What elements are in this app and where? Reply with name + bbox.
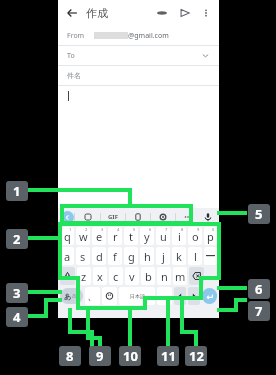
- staticText: 5: [133, 227, 136, 232]
- staticText: l: [194, 249, 197, 264]
- staticText: 9: [96, 347, 104, 365]
- button[interactable]: More options: [200, 7, 212, 19]
- button[interactable]: 、: [85, 287, 100, 305]
- staticText: 作成: [86, 6, 108, 20]
- button[interactable]: Enter: [202, 288, 217, 304]
- staticText: 7: [165, 227, 168, 232]
- button[interactable]: 。: [157, 287, 172, 305]
- staticText: 2: [85, 227, 88, 232]
- button[interactable]: Back: [61, 211, 74, 224]
- button[interactable]: [60, 267, 75, 285]
- button[interactable]: Back: [65, 6, 79, 20]
- staticText: To: [67, 51, 75, 61]
- button[interactable]: n: [157, 267, 171, 285]
- staticText: 2: [13, 230, 21, 248]
- button[interactable]: o: [188, 227, 202, 245]
- button[interactable]: v: [125, 267, 139, 285]
- button[interactable]: ー: [204, 247, 217, 265]
- button[interactable]: m: [173, 267, 187, 285]
- button[interactable]: あ: [60, 288, 83, 304]
- staticText: GIF: [108, 213, 118, 221]
- staticText: r: [113, 229, 118, 244]
- staticText: 7: [255, 302, 263, 320]
- staticText: z: [81, 269, 87, 284]
- button[interactable]: e: [92, 227, 106, 245]
- button[interactable]: [188, 287, 200, 305]
- staticText: d: [96, 249, 103, 264]
- staticText: k: [176, 249, 182, 264]
- button[interactable]: b: [141, 267, 155, 285]
- staticText: 1: [13, 182, 21, 200]
- button[interactable]: z: [77, 267, 91, 285]
- button[interactable]: c: [109, 267, 123, 285]
- staticText: 4: [117, 227, 120, 232]
- staticText: 日本語: [130, 293, 145, 299]
- button[interactable]: h: [140, 247, 154, 265]
- staticText: ー: [205, 249, 216, 263]
- staticText: x: [97, 269, 103, 284]
- button[interactable]: x: [93, 267, 107, 285]
- staticText: h: [144, 249, 151, 264]
- button[interactable]: [102, 287, 117, 305]
- staticText: 0: [212, 227, 215, 232]
- button[interactable]: f: [108, 247, 122, 265]
- button[interactable]: g: [124, 247, 138, 265]
- staticText: From: [67, 31, 85, 41]
- staticText: 3: [101, 227, 104, 232]
- staticText: 8: [181, 227, 184, 232]
- staticText: s: [80, 249, 86, 264]
- button[interactable]: [174, 287, 186, 305]
- staticText: c: [113, 269, 119, 284]
- staticText: 4: [13, 308, 21, 326]
- staticText: u: [160, 229, 167, 244]
- staticText: あ: [64, 292, 72, 301]
- staticText: t: [129, 229, 133, 244]
- staticText: 1: [69, 227, 72, 232]
- button[interactable]: [189, 267, 204, 285]
- button[interactable]: a: [60, 247, 74, 265]
- button[interactable]: q: [60, 227, 74, 245]
- staticText: j: [162, 249, 165, 264]
- staticText: w: [79, 229, 88, 244]
- button[interactable]: s: [76, 247, 90, 265]
- staticText: q: [64, 229, 71, 244]
- staticText: 8: [66, 347, 74, 365]
- staticText: b: [145, 269, 152, 284]
- staticText: i: [178, 229, 181, 244]
- button[interactable]: Attach: [155, 6, 169, 20]
- staticText: p: [207, 229, 214, 244]
- staticText: 5: [255, 205, 263, 223]
- button[interactable]: Clipboard: [126, 212, 150, 222]
- staticText: a: [64, 249, 71, 264]
- staticText: 6: [255, 280, 263, 298]
- button[interactable]: i: [172, 227, 186, 245]
- button[interactable]: r: [108, 227, 122, 245]
- button[interactable]: Voice input: [200, 208, 216, 226]
- button[interactable]: j: [156, 247, 170, 265]
- button[interactable]: Settings: [151, 212, 175, 222]
- button[interactable]: p: [204, 227, 217, 245]
- staticText: @gmail.com: [128, 31, 169, 41]
- staticText: 11: [161, 347, 176, 365]
- button[interactable]: y: [140, 227, 154, 245]
- button[interactable]: Send: [178, 6, 192, 20]
- button[interactable]: w: [76, 227, 90, 245]
- staticText: g: [128, 249, 135, 264]
- button[interactable]: 日本語: [119, 287, 155, 305]
- button[interactable]: d: [92, 247, 106, 265]
- button[interactable]: u: [156, 227, 170, 245]
- staticText: 10: [123, 347, 138, 365]
- staticText: a1: [72, 291, 80, 301]
- staticText: y: [144, 229, 150, 244]
- button[interactable]: l: [188, 247, 202, 265]
- staticText: 、: [87, 289, 98, 303]
- button[interactable]: Sticker: [75, 212, 100, 222]
- button[interactable]: k: [172, 247, 186, 265]
- button[interactable]: More: [176, 212, 200, 222]
- staticText: n: [161, 269, 168, 284]
- button[interactable]: t: [124, 227, 138, 245]
- staticText: 12: [189, 347, 204, 365]
- staticText: v: [129, 269, 135, 284]
- staticText: m: [175, 269, 186, 284]
- staticText: 6: [149, 227, 152, 232]
